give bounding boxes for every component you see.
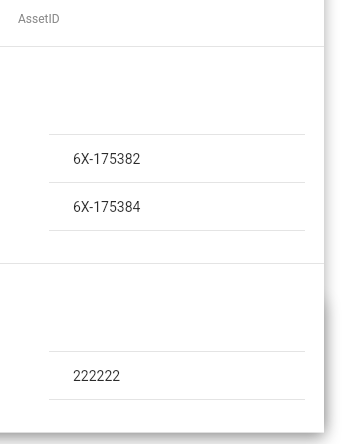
- staticText: 6X-175382: [73, 151, 141, 167]
- button[interactable]: 222222: [0, 352, 324, 399]
- button[interactable]: 6X-175384: [0, 183, 324, 230]
- staticText: 6X-175384: [73, 199, 141, 215]
- staticText: 222222: [73, 368, 121, 384]
- button[interactable]: 6X-175382: [0, 135, 324, 182]
- staticText: AssetID: [18, 12, 60, 26]
- button[interactable]: AssetID: [0, 0, 324, 46]
